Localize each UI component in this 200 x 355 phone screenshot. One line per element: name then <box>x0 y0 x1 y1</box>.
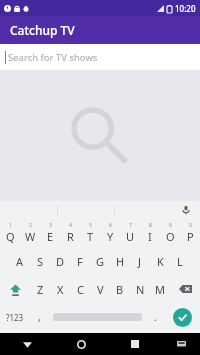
button[interactable]: 3 <box>40 219 60 247</box>
staticText: P <box>187 229 194 244</box>
button[interactable]: C <box>70 275 90 303</box>
staticText: R <box>67 229 74 244</box>
staticText: W <box>25 229 36 244</box>
button[interactable]: V <box>90 275 110 303</box>
button[interactable]: G <box>90 247 110 275</box>
staticText: I <box>148 229 152 244</box>
button[interactable]: Backspace <box>170 275 200 303</box>
staticText: F <box>77 254 83 269</box>
staticText: 6 <box>109 222 112 229</box>
staticText: V <box>97 282 104 297</box>
staticText: Catchup TV <box>10 22 75 38</box>
staticText: D <box>56 254 65 269</box>
button[interactable]: Voice input <box>172 201 200 219</box>
button[interactable]: A <box>10 247 30 275</box>
staticText: O <box>166 229 175 244</box>
staticText: N <box>136 282 145 297</box>
button[interactable]: J <box>130 247 150 275</box>
staticText: C <box>77 282 84 297</box>
button[interactable]: . <box>146 303 165 331</box>
button[interactable]: L <box>170 247 190 275</box>
staticText: 1 <box>9 222 12 229</box>
staticText: H <box>116 254 125 269</box>
staticText: G <box>96 254 105 269</box>
staticText: Search for TV shows <box>8 51 98 64</box>
button[interactable]: 0 <box>180 219 200 247</box>
staticText: . <box>154 310 157 324</box>
button[interactable]: Z <box>30 275 50 303</box>
staticText: L <box>177 254 183 269</box>
button[interactable]: Hide keyboard <box>162 333 200 355</box>
staticText: ?123 <box>6 312 24 323</box>
button[interactable]: K <box>150 247 170 275</box>
staticText: Y <box>107 229 114 244</box>
staticText: A <box>16 254 24 269</box>
staticText: 10:20 <box>175 3 196 14</box>
button[interactable]: Home <box>54 333 108 355</box>
button[interactable]: S <box>30 247 50 275</box>
button[interactable]: 6 <box>100 219 120 247</box>
staticText: 8 <box>149 222 152 229</box>
staticText: S <box>37 254 44 269</box>
staticText: K <box>157 254 164 269</box>
staticText: E <box>47 229 54 244</box>
button[interactable]: , <box>30 303 49 331</box>
staticText: 5 <box>89 222 92 229</box>
button[interactable]: 7 <box>120 219 140 247</box>
button[interactable]: 4 <box>60 219 80 247</box>
button[interactable]: 5 <box>80 219 100 247</box>
button[interactable]: Shift <box>0 275 30 303</box>
button[interactable]: M <box>150 275 170 303</box>
button[interactable]: 1 <box>0 219 20 247</box>
button[interactable]: Search <box>165 303 200 331</box>
staticText: 3 <box>49 222 52 229</box>
staticText: 7 <box>129 222 132 229</box>
button[interactable]: D <box>50 247 70 275</box>
button[interactable]: Search for TV shows <box>0 44 200 70</box>
staticText: 9 <box>169 222 172 229</box>
button[interactable]: Recent apps <box>108 333 162 355</box>
staticText: 0 <box>189 222 192 229</box>
staticText: X <box>57 282 64 297</box>
button[interactable]: F <box>70 247 90 275</box>
staticText: T <box>87 229 94 244</box>
staticText: Z <box>37 282 44 297</box>
button[interactable]: B <box>110 275 130 303</box>
button[interactable]: X <box>50 275 70 303</box>
staticText: 2 <box>29 222 32 229</box>
button[interactable]: 9 <box>160 219 180 247</box>
button[interactable]: Back <box>0 333 54 355</box>
staticText: , <box>38 310 41 324</box>
button[interactable]: H <box>110 247 130 275</box>
button[interactable]: ?123 <box>0 303 30 331</box>
staticText: 4 <box>69 222 72 229</box>
staticText: B <box>116 282 124 297</box>
staticText: M <box>155 282 165 297</box>
button[interactable]: N <box>130 275 150 303</box>
button[interactable]: 8 <box>140 219 160 247</box>
button[interactable]: Catchup TV <box>0 16 200 44</box>
button[interactable]: Space <box>49 303 146 331</box>
staticText: J <box>138 254 142 269</box>
button[interactable]: 2 <box>20 219 40 247</box>
staticText: U <box>126 229 135 244</box>
staticText: Q <box>6 229 15 244</box>
